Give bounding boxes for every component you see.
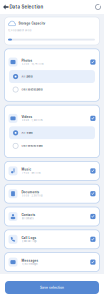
button[interactable]: Call Logs: [4, 230, 99, 249]
staticText: 12.4 GB used of 64 GB: [8, 29, 31, 32]
staticText: Data Selection: [9, 4, 43, 10]
staticText: 5.8 GB · 1,423 files: [21, 119, 42, 122]
button[interactable]: Messages: [4, 253, 99, 272]
button[interactable]: Documents: [4, 184, 99, 203]
staticText: Documents: [21, 190, 39, 194]
staticText: 2,088 call logs: [21, 240, 36, 243]
button[interactable]: All videos: [9, 126, 95, 139]
staticText: 851 contacts: [21, 217, 33, 220]
button[interactable]: Only selected photos: [9, 83, 95, 96]
staticText: 11,812 messages: [21, 263, 37, 265]
staticText: All videos: [21, 131, 32, 134]
staticText: Call Logs: [21, 236, 36, 239]
button[interactable]: Music: [4, 161, 99, 180]
button[interactable]: Back: [1, 1, 9, 13]
staticText: Videos: [21, 115, 32, 119]
button[interactable]: Only selected videos: [9, 139, 95, 152]
staticText: 0.6 GB · 2,310 files: [21, 194, 42, 197]
staticText: Messages: [21, 259, 38, 262]
staticText: Music: [21, 168, 31, 171]
staticText: 3.2 GB · 10,741 files: [21, 63, 43, 65]
staticText: Contacts: [21, 213, 35, 217]
staticText: All photos: [21, 75, 32, 78]
button[interactable]: Help: [92, 1, 103, 13]
button[interactable]: Save selection: [5, 281, 99, 294]
staticText: Storage Capacity: [19, 22, 46, 25]
staticText: Save selection: [40, 286, 64, 289]
staticText: Only selected photos: [21, 88, 42, 91]
staticText: Photos: [21, 59, 32, 62]
button[interactable]: All photos: [9, 70, 95, 83]
button[interactable]: Contacts: [4, 207, 99, 226]
staticText: 1.4 GB · 891 files: [21, 172, 40, 174]
staticText: Only selected videos: [21, 144, 42, 147]
